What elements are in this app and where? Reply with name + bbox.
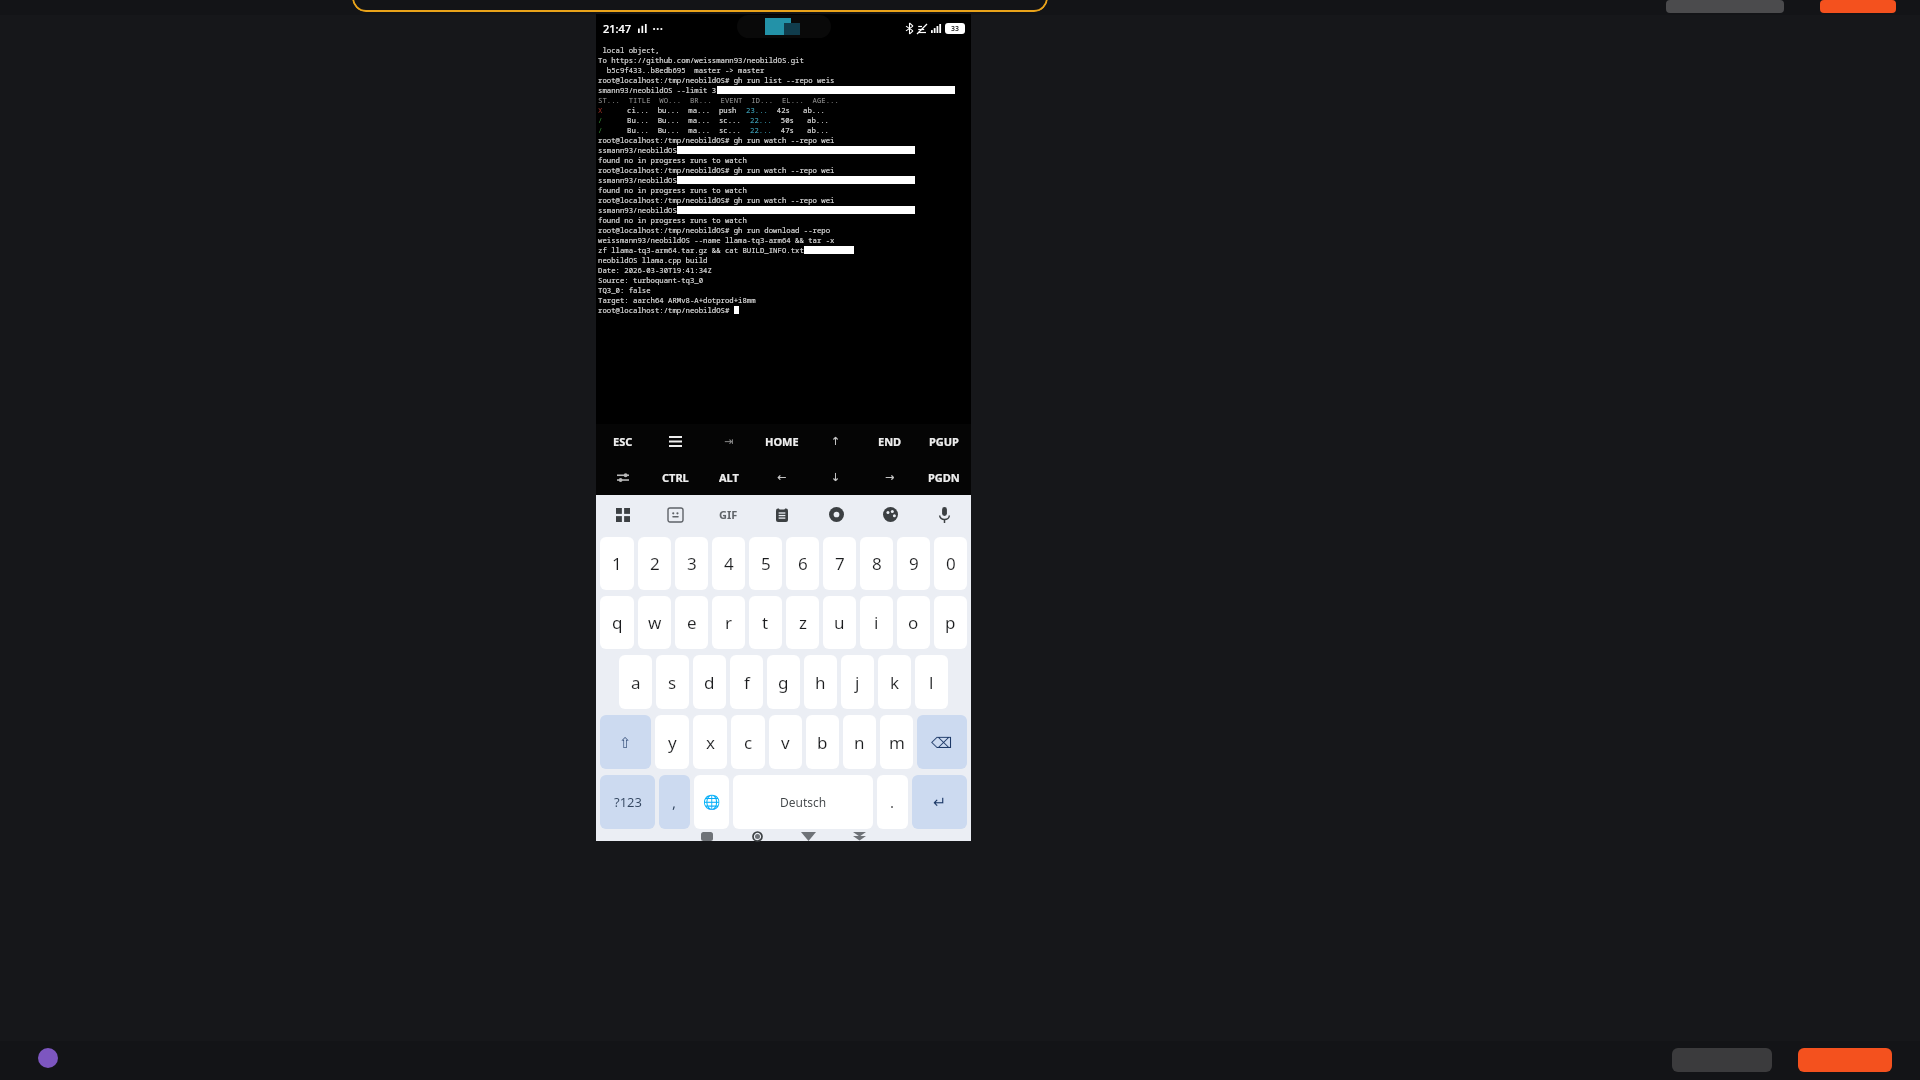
button[interactable]: l [915,655,948,709]
button[interactable]: 4 [712,537,745,590]
button[interactable]: Settings [596,459,649,495]
button[interactable]: 0 [934,537,967,590]
button[interactable]: Shift [600,715,651,769]
button[interactable]: Apps [596,495,649,534]
staticText: To https://github.com/weissmann93/neobil… [598,55,804,65]
button[interactable]: f [730,655,763,709]
button[interactable]: Comma [659,775,690,829]
button[interactable]: Deutsch [733,775,873,829]
button[interactable]: Home [732,832,783,841]
button[interactable]: GIF [702,495,755,534]
button[interactable]: u [823,596,856,649]
button[interactable]: PGUP [917,424,971,459]
button[interactable]: HOME [755,424,809,459]
button[interactable]: d [693,655,726,709]
button[interactable]: 6 [786,537,819,590]
button[interactable]: ALT [702,459,755,495]
button[interactable]: Collapse [834,832,885,841]
button[interactable]: r [712,596,745,649]
button[interactable]: Back [681,832,732,841]
staticText: a [631,671,641,694]
button[interactable]: i [860,596,893,649]
button[interactable]: n [843,715,876,769]
staticText: ssmann93/neobildOS [598,205,677,215]
button[interactable]: k [878,655,911,709]
button[interactable]: g [767,655,800,709]
button[interactable]: Stop [1798,1048,1892,1072]
staticText: root@localhost:/tmp/neobildOS# gh run do… [598,225,831,235]
button[interactable]: m [880,715,913,769]
staticText: , [672,792,677,812]
button[interactable]: Profile [38,1048,58,1068]
staticText: 6 [798,552,808,575]
button[interactable]: PGDN [917,459,971,495]
staticText: u [834,611,845,634]
staticText: h [815,671,826,694]
button[interactable]: ← [755,459,809,495]
staticText: ⌫ [931,734,953,751]
staticText: ci... bu... ma... push [627,105,746,115]
button[interactable]: h [804,655,837,709]
button[interactable]: 3 [675,537,708,590]
staticText: j [855,671,860,694]
staticText: p [945,611,956,634]
staticText: 2 [650,552,660,575]
staticText: 8 [872,552,882,575]
staticText: neobildOS llama.cpp build [598,255,708,265]
button[interactable]: 9 [897,537,930,590]
button[interactable]: 8 [860,537,893,590]
button[interactable]: e [675,596,708,649]
button[interactable]: Menu [649,424,702,459]
button[interactable]: c [731,715,765,769]
button[interactable]: Language [694,775,729,829]
button[interactable]: q [600,596,634,649]
button[interactable]: b [806,715,839,769]
button[interactable]: w [638,596,671,649]
staticText: w [648,611,662,634]
button[interactable]: Tab [702,424,755,459]
button[interactable]: Settings [809,495,863,534]
staticText: 47s ab... [772,125,829,135]
button[interactable]: Record [1820,0,1896,13]
button[interactable]: Clipboard [755,495,809,534]
button[interactable]: Backspace [917,715,967,769]
button[interactable]: o [897,596,930,649]
button[interactable]: Window [1666,0,1784,13]
button[interactable]: z [786,596,819,649]
button[interactable]: y [655,715,689,769]
button[interactable]: ?123 [600,775,655,829]
staticText: 22... [750,125,772,135]
button[interactable]: x [693,715,727,769]
button[interactable]: a [619,655,652,709]
button[interactable]: Enter [912,775,967,829]
staticText: 5 [761,552,771,575]
button[interactable]: Action [1672,1048,1772,1072]
button[interactable]: j [841,655,874,709]
staticText: root@localhost:/tmp/neobildOS# gh run wa… [598,135,835,145]
staticText: 23... [746,105,768,115]
button[interactable]: Voice input [917,495,971,534]
staticText: root@localhost:/tmp/neobildOS# [598,305,734,315]
staticText: 33 [951,24,960,34]
button[interactable]: CTRL [649,459,702,495]
button[interactable]: ↑ [809,424,863,459]
staticText: 🌐 [703,794,721,810]
button[interactable]: Stickers [649,495,702,534]
staticText: zf llama-tq3-arm64.tar.gz && cat BUILD_I… [598,245,804,255]
button[interactable]: p [934,596,967,649]
button[interactable]: v [769,715,802,769]
button[interactable]: s [656,655,689,709]
button[interactable]: → [863,459,917,495]
button[interactable]: Period [877,775,908,829]
button[interactable]: 5 [749,537,782,590]
button[interactable]: ESC [596,424,649,459]
button[interactable]: t [749,596,782,649]
button[interactable]: Themes [863,495,917,534]
button[interactable]: 7 [823,537,856,590]
button[interactable]: Hide keyboard [783,832,834,841]
button[interactable]: 2 [638,537,671,590]
button[interactable]: 1 [600,537,634,590]
button[interactable]: END [863,424,917,459]
button[interactable]: ↓ [809,459,863,495]
staticText: TQ3_0: false [598,285,651,295]
